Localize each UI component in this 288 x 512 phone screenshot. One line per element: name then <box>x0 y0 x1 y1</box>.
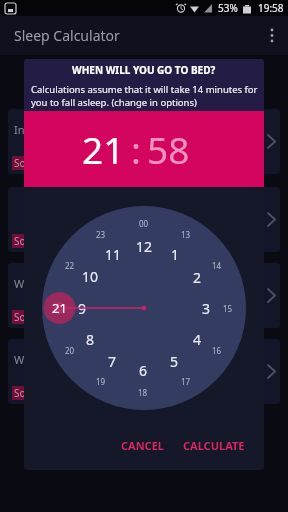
staticText: 21 <box>52 299 67 317</box>
staticText: 6 <box>139 361 148 379</box>
staticText: 12 <box>136 237 153 255</box>
staticText: Sound asleep at <box>14 156 89 170</box>
staticText: 8 <box>86 330 95 348</box>
staticText: CALCULATE <box>183 438 245 453</box>
button[interactable]: Wake up at <box>8 339 280 404</box>
button[interactable] <box>258 16 288 55</box>
staticText: 17 <box>181 376 191 387</box>
staticText: Wake up at <box>14 276 72 290</box>
staticText: In bed at this time <box>14 122 109 136</box>
staticText: 19 <box>96 376 106 387</box>
staticText: 4 <box>193 330 202 348</box>
staticText: : <box>131 124 141 174</box>
staticText: CANCEL <box>121 438 164 453</box>
staticText: 20 <box>65 345 75 356</box>
staticText: 10 <box>82 267 99 285</box>
staticText: Calculations assume that it will take 14… <box>31 83 258 109</box>
staticText: Sleep Calculator <box>14 26 120 45</box>
staticText: 23 <box>96 229 106 240</box>
staticText: Sound asleep at <box>14 234 89 248</box>
staticText: 00 <box>139 218 149 229</box>
button[interactable]: CALCULATE <box>176 431 252 459</box>
staticText: 58 <box>147 124 190 174</box>
staticText: 2 <box>193 268 202 286</box>
staticText: 9 <box>78 299 87 317</box>
staticText: 7 <box>108 352 117 370</box>
button[interactable]: CANCEL <box>112 431 172 459</box>
staticText: 53% <box>218 1 238 15</box>
staticText: Sound asleep at <box>14 310 89 324</box>
button[interactable]: In bed at this time <box>8 109 280 174</box>
staticText: 16 <box>212 345 222 356</box>
button[interactable]: Wake up at <box>8 263 280 328</box>
staticText: Sound asleep at <box>14 386 89 400</box>
staticText: WHEN WILL YOU GO TO BED? <box>72 63 216 77</box>
staticText: Wake up at <box>14 352 72 366</box>
staticText: 5 <box>170 352 179 370</box>
staticText: 21 <box>82 124 125 174</box>
staticText: 3 <box>202 299 211 317</box>
staticText: 18 <box>138 387 148 398</box>
staticText: 11 <box>105 245 122 263</box>
staticText: 13 <box>181 229 191 240</box>
button[interactable]: Sound asleep at <box>8 187 280 252</box>
staticText: 19:58 <box>258 1 284 15</box>
staticText: 14 <box>212 260 222 271</box>
staticText: 22 <box>65 260 75 271</box>
staticText: 1 <box>171 245 180 263</box>
staticText: 15 <box>223 303 233 314</box>
